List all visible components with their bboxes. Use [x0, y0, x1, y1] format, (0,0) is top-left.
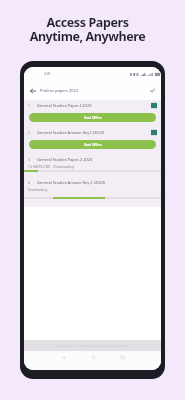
staticText: 1 [28, 103, 30, 108]
staticText: 1.5 MB/10.2 MB (Downloading) [28, 165, 74, 169]
staticText: General Studies Paper-2 2023 [37, 157, 93, 162]
staticText: Read Offline [84, 143, 102, 147]
button[interactable]: Read Offline [29, 140, 156, 149]
button[interactable]: Read Offline [29, 113, 156, 122]
staticText: Read Offline [84, 116, 102, 120]
button[interactable]: Back [28, 86, 37, 95]
staticText: Downloading... [28, 188, 50, 192]
button[interactable]: Done [148, 86, 157, 95]
button[interactable]: Recents [115, 351, 129, 363]
staticText: Access Papers Anytime, Anywhere [0, 14, 180, 45]
button[interactable]: 2 [24, 127, 161, 154]
button[interactable]: 1 [24, 100, 161, 127]
staticText: 2 [28, 130, 30, 135]
button[interactable]: Home [86, 351, 100, 363]
button[interactable]: Back [56, 351, 70, 363]
staticText: 4 [28, 180, 30, 185]
button[interactable]: 4 [24, 177, 161, 207]
staticText: Sponsored · Learn more about this advert… [56, 344, 130, 348]
staticText: Prelims papers 2023 [40, 88, 79, 93]
button[interactable]: 3 [24, 154, 161, 177]
staticText: 2:09 [44, 72, 51, 76]
staticText: General Studies Answer Key I (2023) [37, 130, 105, 135]
staticText: General Studies Paper-I 2023 [37, 103, 92, 108]
staticText: General Studies Answer Key 2 (2023) [37, 180, 106, 185]
staticText: 3 [28, 157, 30, 162]
